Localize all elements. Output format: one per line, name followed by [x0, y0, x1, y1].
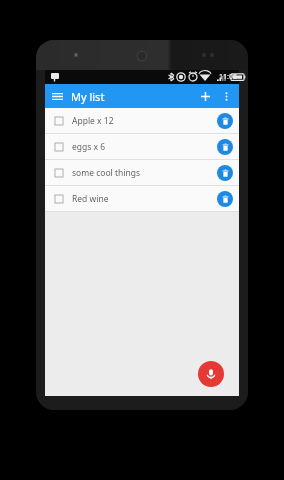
button[interactable]: Toggle some cool things: [52, 166, 66, 180]
staticText: eggs x 6: [72, 141, 217, 153]
button[interactable]: Open navigation drawer: [49, 88, 65, 104]
button[interactable]: Voice input: [198, 361, 224, 387]
staticText: 11:05: [219, 72, 237, 82]
button[interactable]: Toggle eggs x 6: [52, 140, 66, 154]
button[interactable]: Delete Apple x 12: [217, 113, 233, 129]
button[interactable]: Delete eggs x 6: [217, 139, 233, 155]
button[interactable]: Toggle Red wine: [52, 192, 66, 206]
button[interactable]: Delete some cool things: [217, 165, 233, 181]
staticText: Apple x 12: [72, 115, 217, 127]
button[interactable]: Toggle eggs x 6: [45, 134, 239, 159]
button[interactable]: Toggle Apple x 12: [52, 114, 66, 128]
staticText: some cool things: [72, 167, 217, 179]
button[interactable]: Toggle some cool things: [45, 160, 239, 185]
button[interactable]: Toggle Apple x 12: [45, 108, 239, 133]
button[interactable]: Add item: [197, 88, 213, 104]
button[interactable]: Toggle Red wine: [45, 186, 239, 211]
staticText: My list: [71, 89, 105, 104]
button[interactable]: Delete Red wine: [217, 191, 233, 207]
button[interactable]: More options: [218, 88, 234, 104]
staticText: Red wine: [72, 193, 217, 205]
